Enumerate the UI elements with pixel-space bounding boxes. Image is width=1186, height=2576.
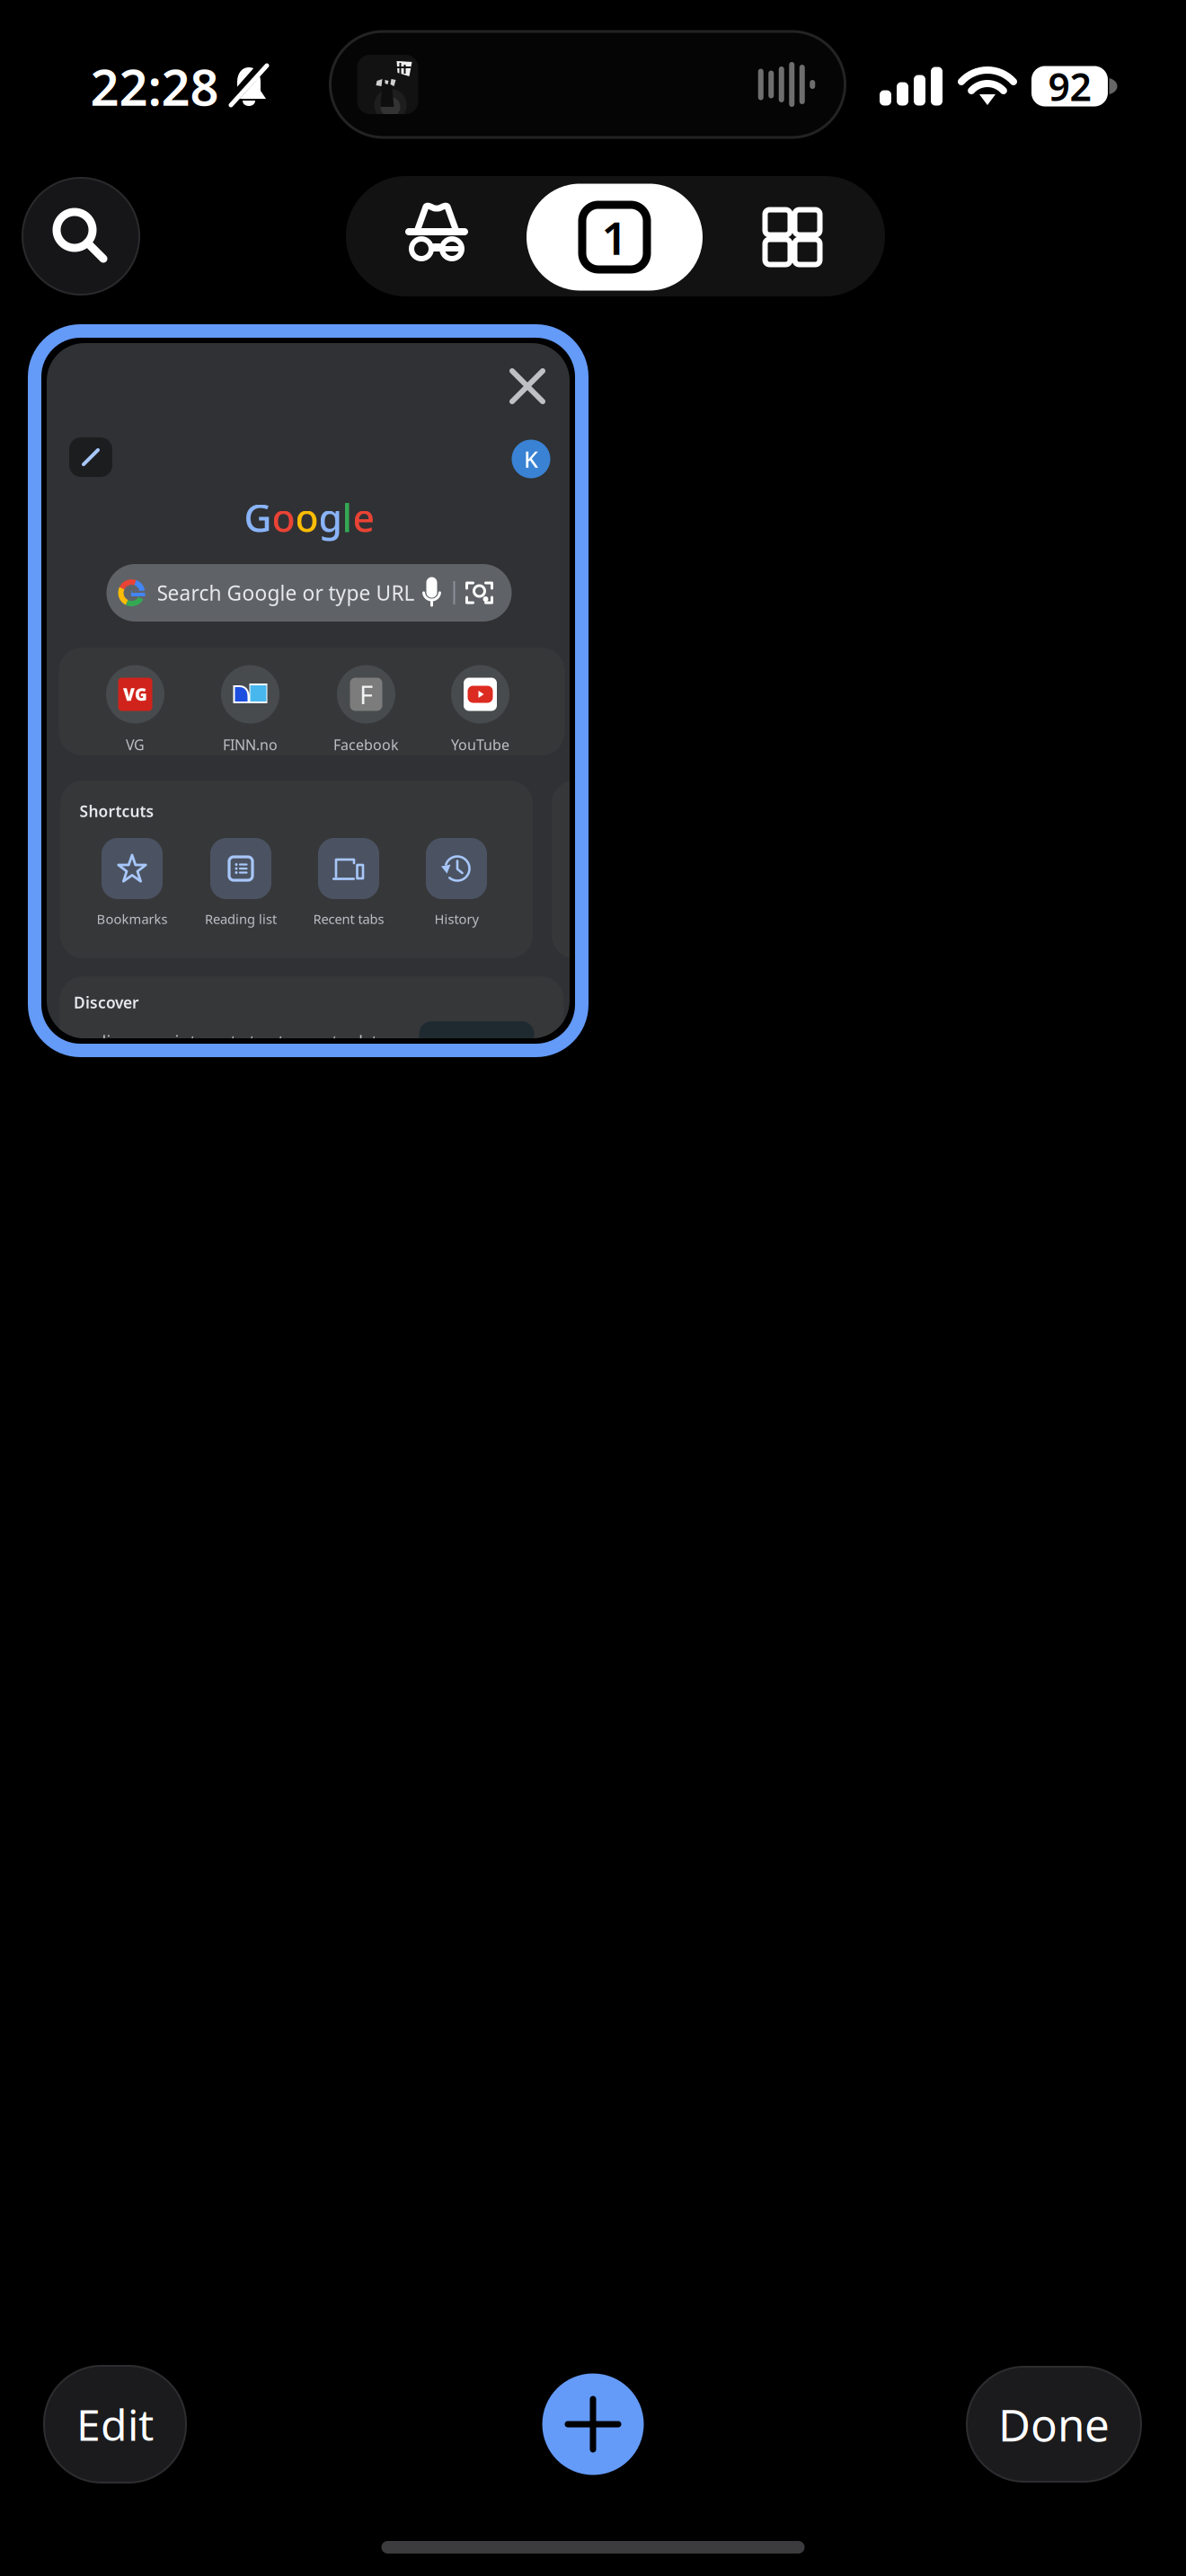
button[interactable]: Account xyxy=(512,440,550,478)
staticText: Done xyxy=(998,2395,1110,2454)
staticText: Shortcuts xyxy=(80,801,154,821)
staticText: K xyxy=(524,444,538,474)
button[interactable]: Bookmarks xyxy=(79,838,185,955)
button[interactable]: Incognito tabs xyxy=(356,172,518,293)
staticText: VG xyxy=(123,683,147,705)
button[interactable]: Done xyxy=(967,2367,1141,2482)
button[interactable]: Reading list xyxy=(188,838,294,955)
button[interactable]: Customize new tab page xyxy=(69,437,112,477)
button[interactable]: New tab xyxy=(542,2373,644,2475)
staticText: VG xyxy=(126,735,145,754)
staticText: Personalize your interests to stay up to… xyxy=(37,1030,388,1052)
button[interactable]: Search Google or type URL xyxy=(106,564,512,622)
button[interactable]: Search tabs xyxy=(22,178,139,295)
staticText: Facebook xyxy=(333,735,399,754)
staticText: g xyxy=(319,492,342,543)
button[interactable]: Edit xyxy=(44,2366,186,2483)
staticText: F xyxy=(359,677,373,712)
staticText: History xyxy=(434,910,478,928)
staticText: Reading list xyxy=(205,910,277,928)
staticText: l xyxy=(342,492,353,543)
staticText: Edit xyxy=(76,2396,154,2453)
button[interactable]: Open tabs, 1 xyxy=(527,177,703,297)
staticText: 92 xyxy=(1048,61,1091,112)
staticText: o xyxy=(272,492,295,543)
button[interactable]: F xyxy=(310,648,423,748)
button[interactable]: VG xyxy=(79,648,192,748)
staticText: G xyxy=(244,492,272,543)
button[interactable]: Recent tabs xyxy=(296,838,402,955)
button[interactable]: YouTube xyxy=(424,648,537,748)
staticText: YouTube xyxy=(451,735,509,754)
button[interactable]: FINN.no xyxy=(194,648,307,748)
button[interactable]: History xyxy=(403,838,509,955)
staticText: 22:28 xyxy=(90,53,219,120)
staticText: o xyxy=(295,492,319,543)
staticText: Recent tabs xyxy=(313,910,384,928)
button[interactable]: Tab groups xyxy=(712,177,873,297)
staticText: 1 xyxy=(602,207,628,267)
staticText: FINN.no xyxy=(223,735,278,754)
button[interactable]: Close tab xyxy=(495,354,560,419)
staticText: Bookmarks xyxy=(97,910,168,928)
staticText: Discover xyxy=(74,992,139,1013)
staticText: e xyxy=(353,492,374,543)
staticText: Search Google or type URL xyxy=(157,579,415,606)
